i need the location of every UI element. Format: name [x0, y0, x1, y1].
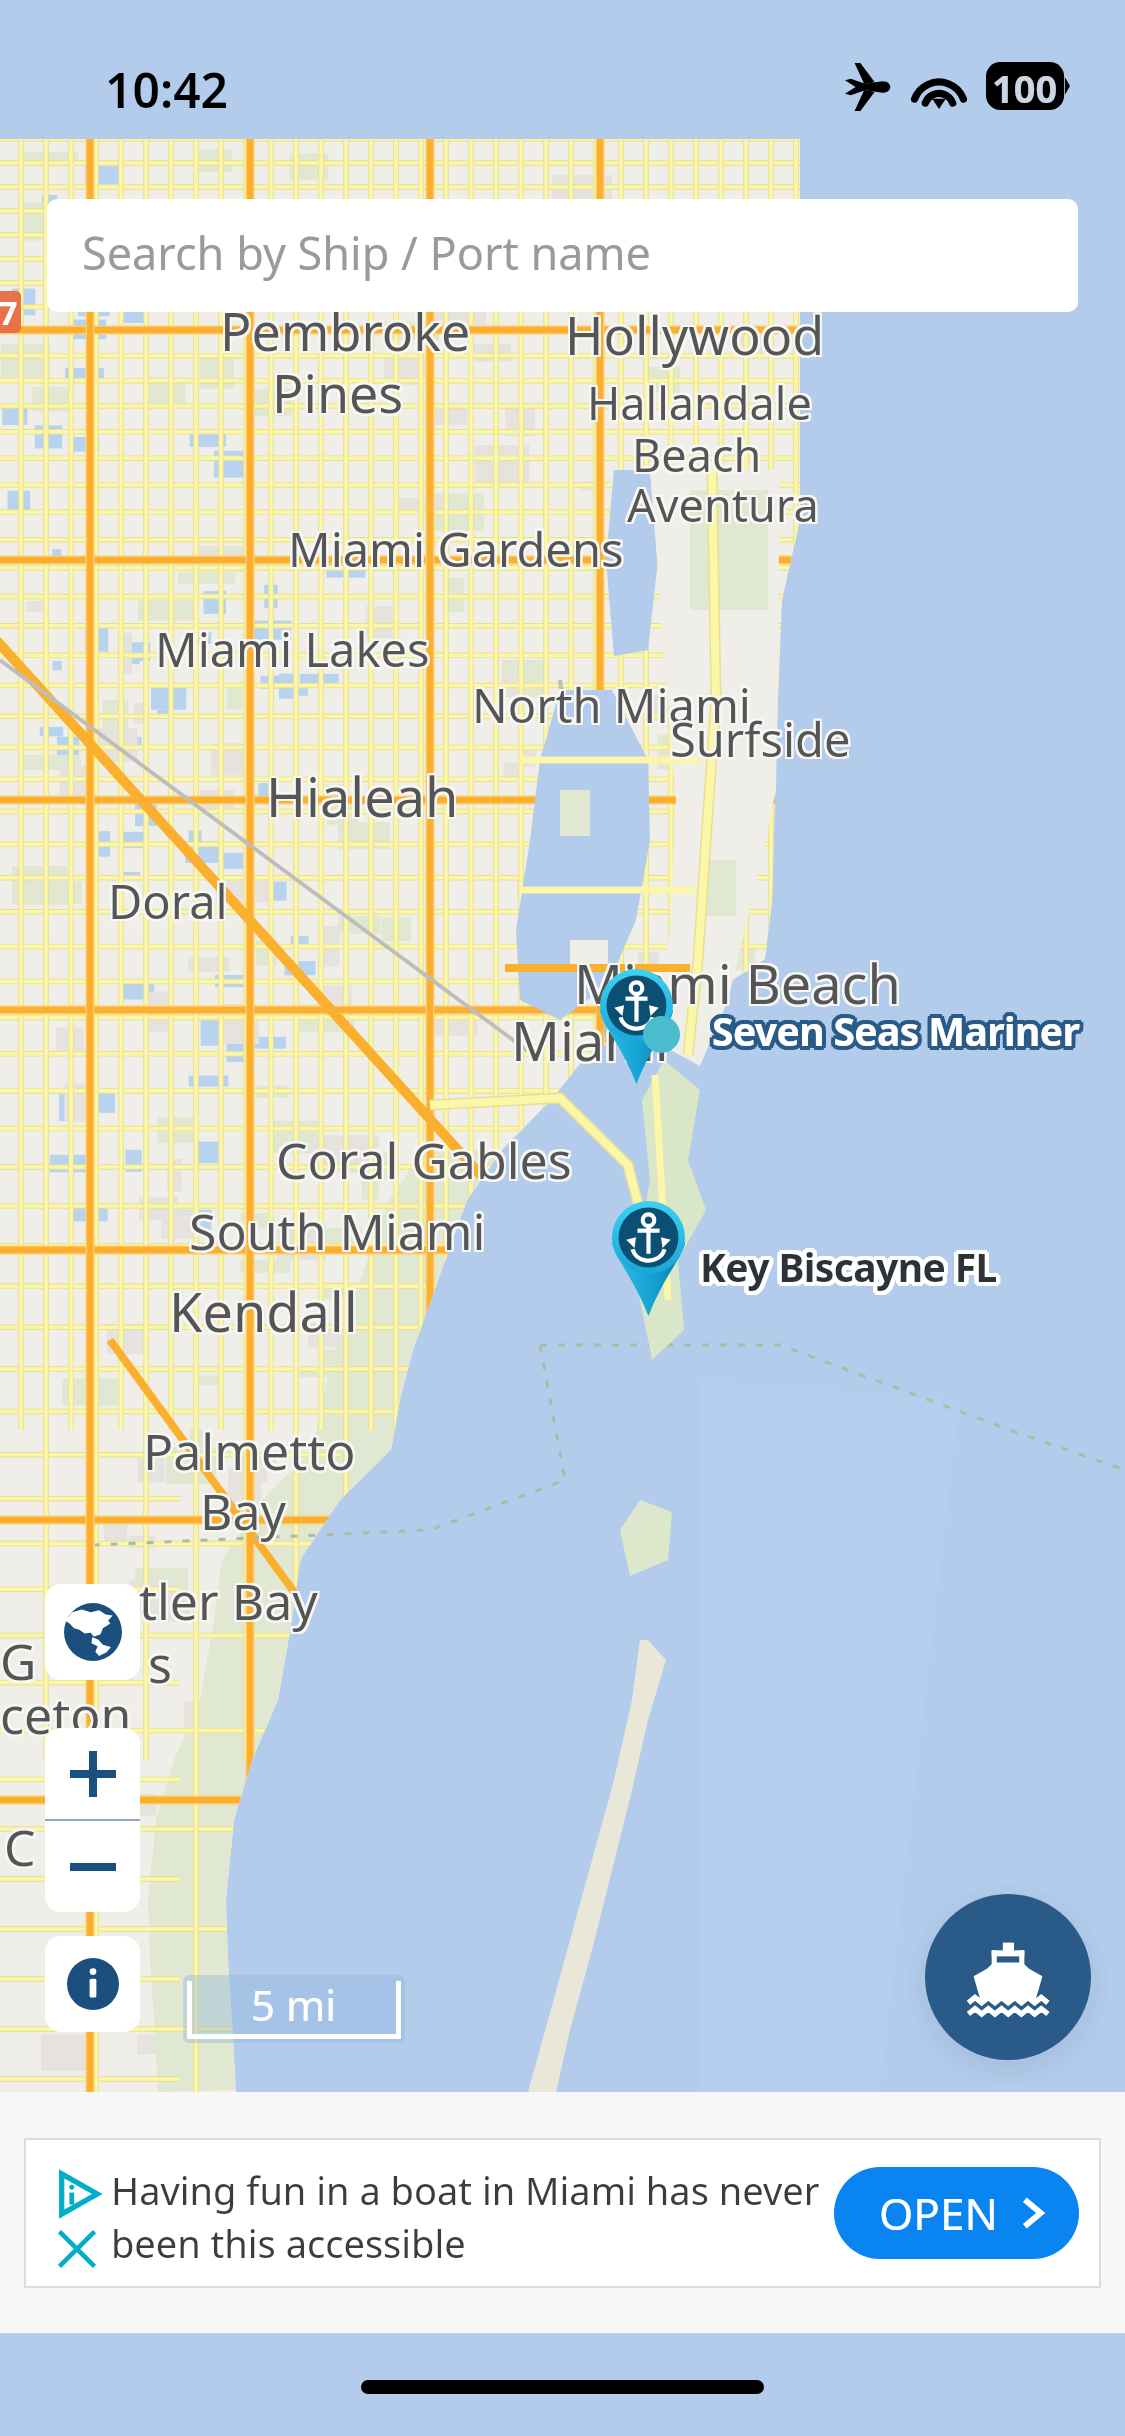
staticText: Bay — [200, 1479, 287, 1547]
staticText: Seven Seas Mariner — [714, 1008, 1082, 1061]
button[interactable]: Show ships — [925, 1894, 1091, 2060]
button[interactable]: Key Biscayne FL marker — [612, 1199, 685, 1318]
staticText: utler Bay — [106, 1569, 316, 1637]
staticText: ceton — [0, 1681, 130, 1749]
staticText: Key Biscayne FL — [702, 1244, 999, 1297]
staticText: Seven Seas Mariner — [714, 1006, 1082, 1059]
staticText: Hollywood — [567, 297, 827, 368]
staticText: Palmetto — [143, 1419, 356, 1487]
staticText: Seven Seas Mariner — [714, 1004, 1082, 1057]
staticText: Seven Seas Mariner — [714, 1002, 1082, 1055]
staticText: Miami Gardens — [290, 515, 626, 579]
staticText: Miami — [511, 1003, 669, 1077]
staticText: Doral — [106, 871, 226, 935]
staticText: Pines — [272, 357, 404, 428]
staticText: Aventura — [627, 474, 819, 535]
staticText: Miami Gardens — [288, 515, 624, 579]
staticText: Pines — [274, 359, 406, 430]
staticText: utler Bay — [108, 1565, 318, 1633]
staticText: Seven Seas Mariner — [716, 1002, 1084, 1055]
staticText: Bay — [202, 1477, 289, 1545]
button[interactable]: Zoom in — [45, 1728, 140, 1819]
staticText: Miami — [513, 1005, 671, 1079]
staticText: utler Bay — [108, 1567, 318, 1635]
staticText: Miami Beach — [574, 946, 901, 1020]
staticText: North Miami — [472, 671, 751, 735]
staticText: Pembroke — [220, 293, 471, 364]
staticText: Key Biscayne FL — [702, 1238, 999, 1291]
staticText: Pines — [270, 355, 402, 426]
staticText: ceton — [2, 1683, 134, 1751]
staticText: Key Biscayne FL — [698, 1238, 995, 1291]
staticText: Pembroke — [220, 297, 471, 368]
staticText: C — [6, 1811, 38, 1879]
staticText: Hallandale — [589, 370, 814, 431]
staticText: Miami Gardens — [286, 519, 622, 583]
staticText: Key Biscayne FL — [700, 1236, 997, 1289]
staticText: Miami Gardens — [286, 517, 622, 581]
staticText: Miami Lakes — [157, 617, 432, 681]
staticText: Hollywood — [567, 299, 827, 370]
staticText: Key Biscayne FL — [704, 1238, 1001, 1291]
staticText: Doral — [108, 869, 228, 933]
staticText: Miami Lakes — [155, 617, 430, 681]
staticText: Bay — [200, 1477, 287, 1545]
staticText: Kendall — [171, 1276, 360, 1350]
staticText: Miami Lakes — [155, 619, 430, 683]
staticText: Seven Seas Mariner — [710, 1002, 1078, 1055]
staticText: Palmetto — [141, 1415, 354, 1483]
staticText: Miami Lakes — [153, 619, 428, 683]
staticText: South Miami — [191, 1197, 488, 1265]
button[interactable]: Seven Seas Mariner marker — [600, 967, 673, 1086]
button[interactable]: Ad choices — [26, 2140, 1099, 2286]
button[interactable]: Ad choices — [54, 2170, 102, 2218]
button[interactable]: Search by Ship / Port name — [47, 199, 1078, 312]
staticText: Hialeah — [266, 761, 459, 835]
staticText: Key Biscayne FL — [702, 1236, 999, 1289]
staticText: Hallandale — [587, 374, 812, 435]
staticText: Miami Lakes — [155, 615, 430, 679]
staticText: ceton — [0, 1683, 132, 1751]
staticText: Key Biscayne FL — [704, 1240, 1001, 1293]
staticText: Aventura — [627, 472, 819, 533]
staticText: Aventura — [627, 476, 819, 537]
staticText: Hallandale — [585, 374, 810, 435]
button[interactable]: OPEN — [834, 2167, 1079, 2259]
staticText: Beach — [632, 422, 762, 483]
button[interactable]: Change map type — [45, 1584, 140, 1680]
staticText: Surfside — [672, 705, 853, 769]
staticText: s — [146, 1632, 170, 1700]
staticText: Palmetto — [143, 1415, 356, 1483]
staticText: Hialeah — [268, 761, 461, 835]
staticText: Kendall — [169, 1274, 358, 1348]
staticText: ceton — [0, 1683, 130, 1751]
staticText: Surfside — [670, 707, 851, 771]
staticText: Miami Lakes — [157, 615, 432, 679]
staticText: utler Bay — [106, 1567, 316, 1635]
staticText: Hollywood — [563, 301, 823, 372]
staticText: Aventura — [629, 474, 821, 535]
staticText: OPEN — [879, 2183, 998, 2243]
button[interactable]: Info — [45, 1936, 140, 2032]
staticText: G — [0, 1629, 35, 1697]
staticText: G — [0, 1627, 35, 1695]
staticText: Coral Gables — [276, 1126, 572, 1194]
button[interactable]: Zoom out — [45, 1821, 140, 1912]
staticText: Pines — [270, 357, 402, 428]
button[interactable]: Close ad — [54, 2226, 100, 2272]
staticText: Hallandale — [587, 372, 812, 433]
staticText: Doral — [110, 867, 230, 931]
staticText: s — [148, 1628, 172, 1696]
staticText: Hallandale — [585, 372, 810, 433]
staticText: Hialeah — [268, 759, 461, 833]
staticText: C — [2, 1811, 34, 1879]
staticText: Hallandale — [585, 370, 810, 431]
staticText: s — [148, 1630, 172, 1698]
staticText: Surfside — [668, 705, 849, 769]
staticText: C — [4, 1815, 36, 1883]
staticText: Bay — [202, 1475, 289, 1543]
staticText: Hialeah — [266, 757, 459, 831]
staticText: Key Biscayne FL — [696, 1238, 993, 1291]
staticText: Seven Seas Mariner — [714, 1000, 1082, 1053]
staticText: Seven Seas Mariner — [712, 1002, 1080, 1055]
